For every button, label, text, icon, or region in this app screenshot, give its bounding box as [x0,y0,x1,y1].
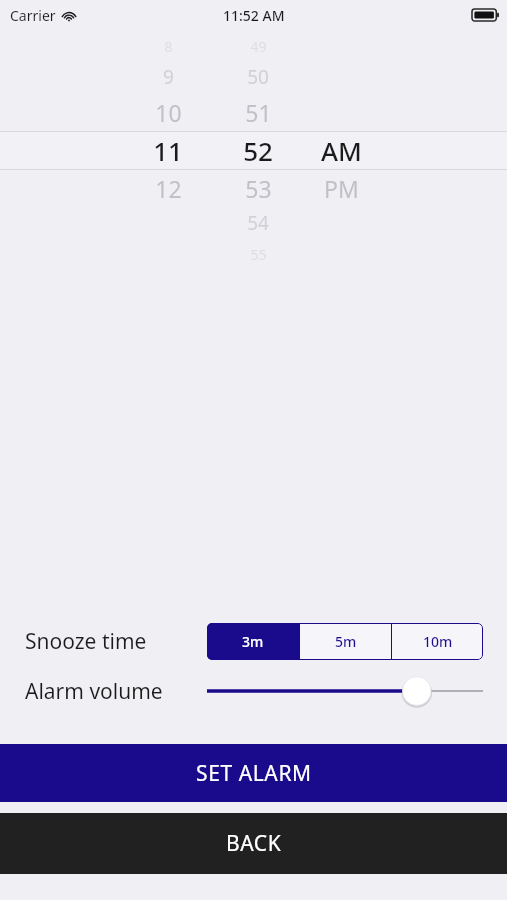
staticText: 53 [245,173,272,204]
staticText: 11:52 AM [223,6,285,25]
staticText: 8 [164,37,173,56]
staticText: 51 [245,97,272,128]
staticText: 5m [335,632,357,651]
staticText: 49 [250,37,267,56]
button[interactable]: 10m [392,623,483,660]
staticText: 12 [155,173,182,204]
staticText: AM [321,133,362,168]
staticText: 54 [247,210,269,236]
staticText: 55 [250,245,267,264]
button[interactable]: AM PM [298,30,384,270]
staticText: 9 [163,64,174,90]
staticText: BACK [226,829,282,858]
staticText: SET ALARM [196,759,312,788]
button[interactable]: BACK [0,813,507,874]
button[interactable]: 5m [300,623,391,660]
staticText: Snooze time [25,627,147,656]
staticText: Alarm volume [25,677,163,706]
staticText: 11 [153,133,183,168]
button[interactable]: Alarm volume slider [207,671,483,711]
button[interactable]: 3m [207,623,299,660]
button[interactable]: SET ALARM [0,744,507,802]
button[interactable]: Minute [218,30,298,270]
button[interactable]: Hour [118,30,218,270]
staticText: 50 [247,64,269,90]
staticText: 52 [243,133,273,168]
staticText: 10m [423,632,453,651]
staticText: 10 [155,97,182,128]
staticText: PM [324,173,359,204]
staticText: 3m [242,632,264,651]
staticText: Carrier [10,6,56,25]
